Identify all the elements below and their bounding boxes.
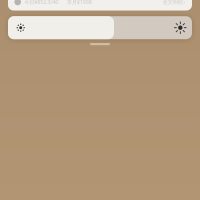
button[interactable]: Brightness: [8, 16, 192, 39]
staticText: 今日¥852.3/40: [24, 0, 58, 6]
button[interactable]: 今日¥852.3/40: [8, 0, 192, 10]
staticText: 本月¥1998: [67, 0, 92, 6]
staticText: 收支明细 ›: [163, 0, 186, 6]
